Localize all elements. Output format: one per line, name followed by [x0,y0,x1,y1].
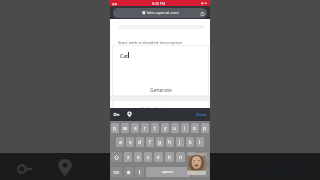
button[interactable]: r [141,123,149,133]
staticText: n [179,154,183,161]
other: Camera preview [187,153,206,175]
button[interactable]: m [187,152,196,162]
button[interactable]: space [146,167,190,177]
button[interactable]: w [121,123,129,133]
staticText: c [147,154,150,161]
staticText: k [189,139,192,146]
staticText: ● ▬ [201,1,208,5]
staticText: b [168,154,172,161]
button[interactable]: i [181,123,189,133]
staticText: DALL·E [268,163,299,175]
staticText: a [119,139,122,146]
button[interactable]: b [165,152,174,162]
button[interactable]: f [146,137,154,147]
staticText: d [138,139,142,146]
button[interactable]: Share [200,11,205,16]
staticText: e [134,125,137,132]
staticText: q [113,125,117,132]
staticText: p [203,125,207,132]
staticText: ●● [112,2,118,5]
button[interactable]: Upload an image [112,100,209,114]
button[interactable]: a [116,137,124,147]
staticText: v [157,154,160,161]
staticText: l [199,139,201,146]
button[interactable]: l [196,137,204,147]
button[interactable]: Emoji [124,167,133,177]
staticText: w [123,125,127,132]
staticText: i [184,125,186,132]
staticText: o [193,125,197,132]
staticText: t [154,125,156,132]
button[interactable]: o [191,123,199,133]
button[interactable]: e [131,123,139,133]
staticText: Generate [150,87,172,94]
staticText: Done [196,112,207,118]
button[interactable]: u [171,123,179,133]
button[interactable]: h [166,137,174,147]
staticText: ● labs.openai.com [142,10,179,16]
button[interactable]: Shift [111,152,122,162]
staticText: s [129,139,132,146]
staticText: u [173,125,177,132]
button[interactable]: v [154,152,163,162]
staticText: y [164,125,167,132]
button[interactable]: 123 [111,167,122,177]
staticText: 123 [113,170,120,175]
button[interactable]: c [144,152,152,162]
button[interactable]: k [186,137,194,147]
button[interactable]: ● labs.openai.com [113,8,207,18]
button[interactable]: Done [196,112,207,118]
button[interactable]: Dictation [135,167,144,177]
staticText: h [168,139,172,146]
button[interactable]: go [192,167,209,177]
button[interactable]: d [136,137,144,147]
button[interactable]: Backspace [198,152,209,162]
button[interactable]: s [126,137,134,147]
staticText: g [158,139,162,146]
staticText: x [137,154,140,161]
button[interactable]: Passwords [113,111,120,118]
button[interactable]: t [151,123,159,133]
staticText: r [144,125,147,132]
button[interactable]: n [176,152,185,162]
staticText: go [198,169,204,175]
button[interactable]: j [176,137,184,147]
button[interactable]: y [161,123,169,133]
staticText: m [189,154,194,161]
staticText: z [127,154,130,161]
button[interactable]: Generate [112,84,209,96]
button[interactable]: Location [126,111,133,118]
button[interactable]: q [111,123,119,133]
staticText: Start with a detailed description [118,39,183,45]
staticText: j [179,139,181,146]
staticText: Cat [120,53,129,60]
staticText: 8:26 PM [152,1,166,6]
button[interactable]: p [201,123,209,133]
button[interactable]: z [124,152,132,162]
button[interactable]: x [134,152,142,162]
staticText: space [162,169,174,175]
staticText: Upload an image [140,106,181,113]
staticText: f [149,139,151,146]
button[interactable]: g [156,137,164,147]
